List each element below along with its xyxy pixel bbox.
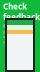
- staticText: Check feedback: [3, 1, 40, 22]
- staticText: Review the notes your reviewer left on e…: [3, 23, 34, 44]
